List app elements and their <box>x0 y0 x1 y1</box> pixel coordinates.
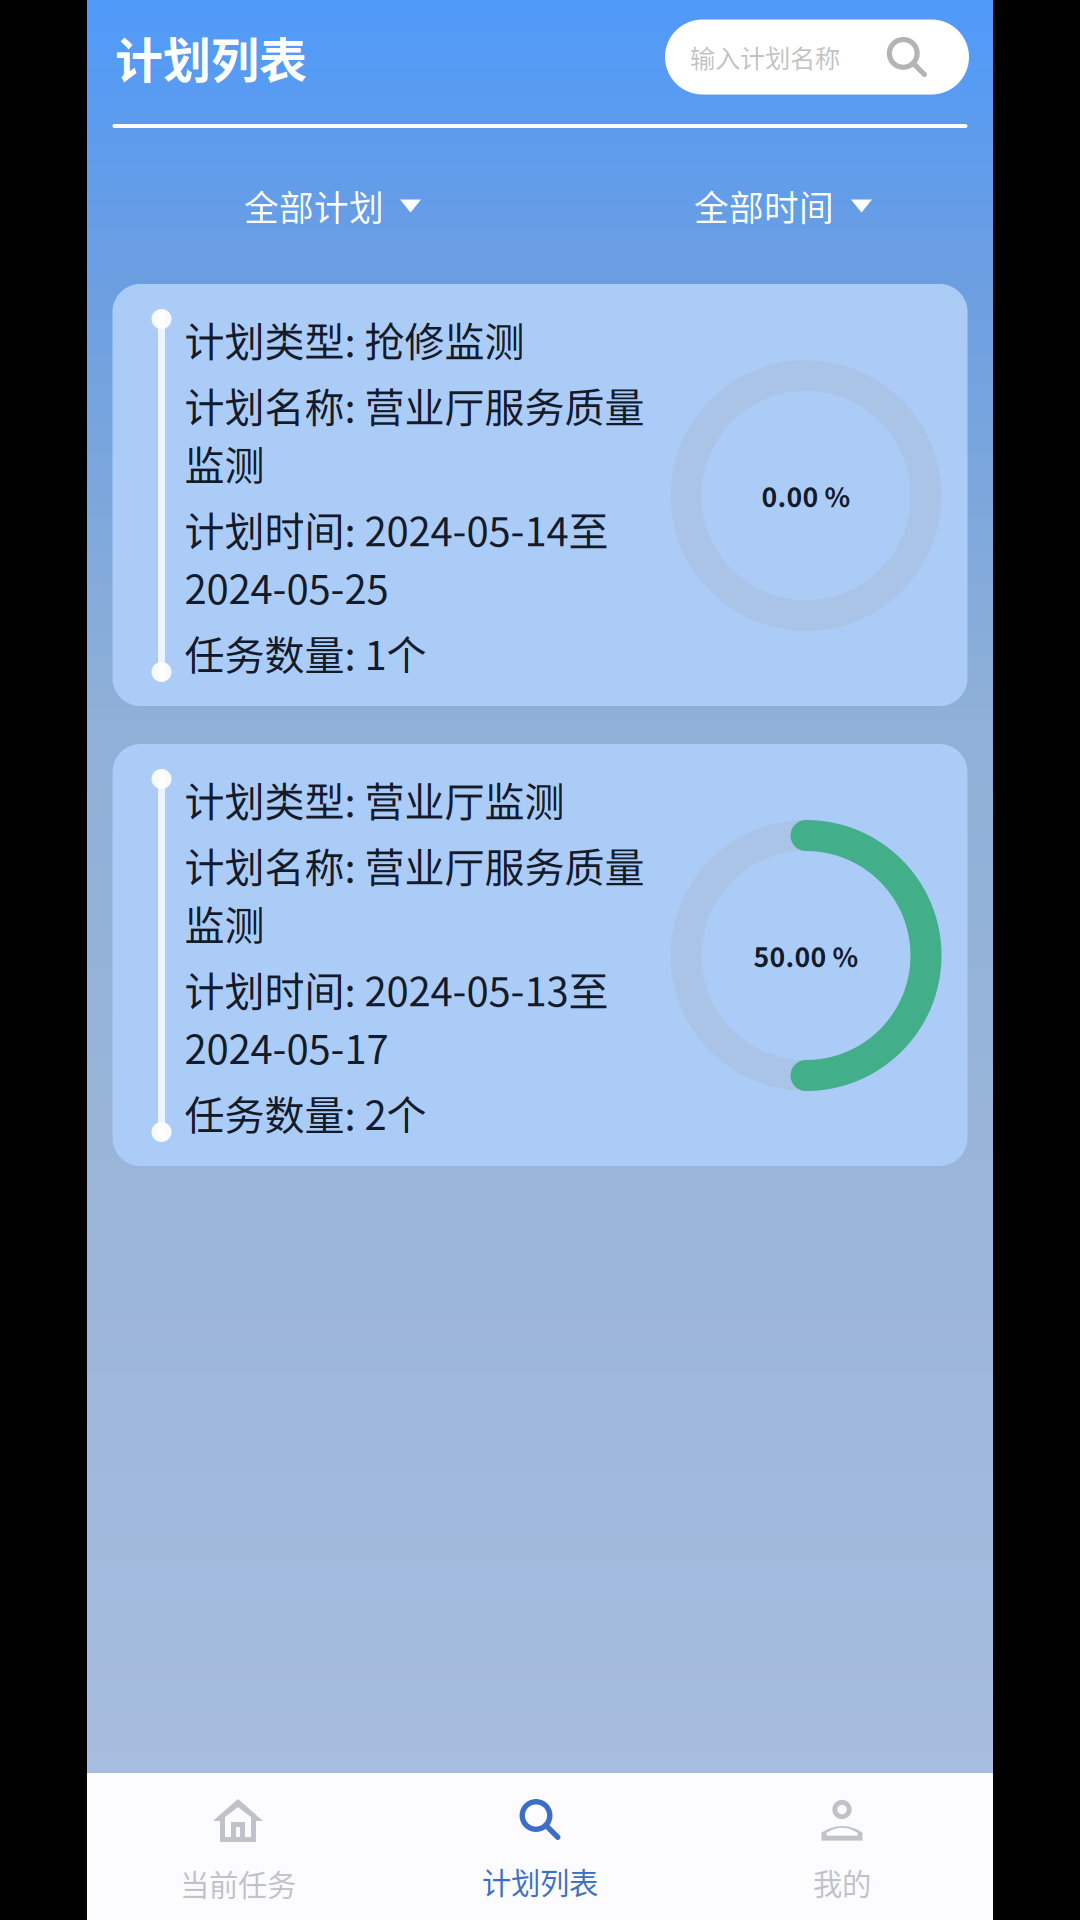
staticText: 全部计划 <box>244 181 384 231</box>
staticText: 计划时间: 2024-05-14至2024-05-25 <box>184 500 608 616</box>
staticText: 计划时间: 2024-05-13至2024-05-17 <box>184 960 608 1076</box>
staticText: 计划名称: 营业厅服务质量监测 <box>184 836 644 952</box>
button[interactable]: 全部计划 <box>244 166 421 246</box>
staticText: 计划列表 <box>115 22 307 92</box>
staticText: 输入计划名称 <box>690 39 840 75</box>
button[interactable]: 计划列表 <box>389 1773 691 1920</box>
staticText: 0.00 % <box>761 476 850 515</box>
staticText: 当前任务 <box>180 1862 296 1904</box>
staticText: 计划类型: 营业厅监测 <box>184 770 564 828</box>
button[interactable]: 计划类型: 抢修监测 <box>112 284 967 706</box>
button[interactable]: 我的 <box>691 1773 993 1920</box>
staticText: 计划列表 <box>482 1860 598 1902</box>
button[interactable]: 计划类型: 营业厅监测 <box>112 744 967 1166</box>
staticText: 任务数量: 2个 <box>184 1084 426 1141</box>
staticText: 50.00 % <box>753 936 858 975</box>
staticText: 计划名称: 营业厅服务质量监测 <box>184 376 644 492</box>
staticText: 全部时间 <box>694 181 834 231</box>
staticText: 计划类型: 抢修监测 <box>184 310 524 368</box>
button[interactable]: 全部时间 <box>694 166 872 246</box>
button[interactable]: 当前任务 <box>87 1773 389 1920</box>
button[interactable]: 输入计划名称 <box>665 19 969 94</box>
staticText: 任务数量: 1个 <box>184 624 426 681</box>
staticText: 我的 <box>813 1861 871 1903</box>
